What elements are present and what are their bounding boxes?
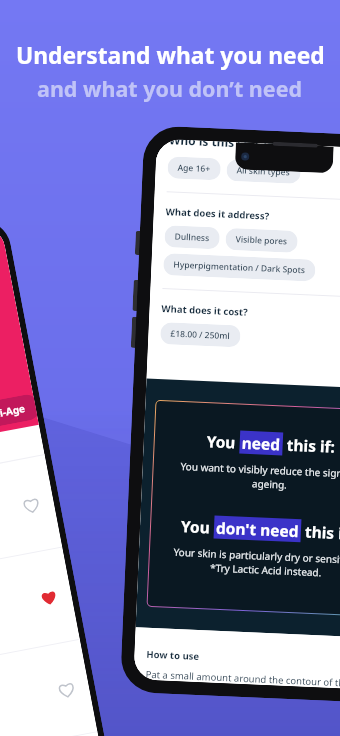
staticText: Dullness (174, 231, 210, 244)
button[interactable]: All skin types (226, 159, 301, 184)
staticText: How to use (146, 648, 200, 663)
staticText: Understand what you need (16, 40, 325, 71)
staticText: don't need (216, 517, 299, 541)
button[interactable]: Visible pores (225, 228, 298, 253)
other: Favourite (21, 495, 41, 515)
staticText: Anti-Age (0, 401, 27, 423)
staticText: this if: (300, 520, 340, 544)
staticText: Age 16+ (177, 162, 211, 175)
button[interactable]: Gentle Cleanser (0, 640, 97, 736)
button[interactable]: £18.00 / 250ml (160, 322, 241, 347)
staticText: and what you don’t need (37, 74, 303, 103)
staticText: Visible pores (235, 233, 288, 247)
button[interactable]: Dullness (164, 225, 220, 249)
button[interactable]: Nourishing Balm (0, 547, 80, 675)
other: Favourite (57, 680, 76, 700)
staticText: What does it address? (165, 205, 270, 223)
other: Unfavourite (39, 587, 59, 607)
button[interactable]: Hyperpigmentation / Dark Spots (163, 253, 316, 282)
staticText: Pat a small amount around the contour of… (145, 668, 340, 689)
staticText: need (241, 432, 281, 454)
staticText: You (181, 515, 214, 537)
button[interactable]: Age 16+ (167, 156, 221, 180)
staticText: £18.00 / 250ml (170, 327, 231, 342)
button[interactable]: Hydrating Serum Intensive (0, 455, 62, 583)
staticText: All skin types (236, 164, 291, 178)
staticText: this if: (282, 433, 336, 457)
staticText: You want to visibly reduce the signs of … (178, 459, 340, 495)
staticText: Who is this suitable for? (169, 139, 312, 153)
staticText: What does it cost? (161, 302, 249, 319)
staticText: Hyperpigmentation / Dark Spots (173, 258, 306, 276)
button[interactable]: Daily Moisturiser (0, 732, 114, 736)
staticText: You (206, 430, 240, 453)
button[interactable]: Anti-Age (0, 393, 38, 431)
staticText: Your skin is particularly dry or sensiti… (168, 545, 340, 581)
